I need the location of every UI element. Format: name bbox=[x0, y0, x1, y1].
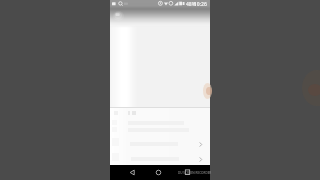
button[interactable] bbox=[110, 137, 210, 151]
button[interactable] bbox=[110, 126, 210, 133]
button[interactable]: Back bbox=[126, 167, 139, 178]
button[interactable]: Recent apps bbox=[181, 167, 194, 178]
button[interactable] bbox=[110, 152, 210, 166]
staticText: 48% bbox=[186, 1, 196, 8]
other: Menu bbox=[112, 10, 126, 22]
button[interactable] bbox=[110, 119, 210, 126]
button[interactable]: Home bbox=[152, 167, 165, 178]
staticText: 10:26 bbox=[194, 1, 207, 8]
staticText: DU SCREEN RECORDER bbox=[178, 171, 212, 175]
